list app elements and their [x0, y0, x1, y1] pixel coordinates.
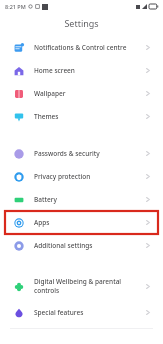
button[interactable]: Passwords & security	[0, 142, 163, 165]
button[interactable]: Home screen	[0, 59, 163, 82]
button[interactable]: Apps	[5, 211, 158, 234]
staticText: Privacy protection	[34, 172, 142, 181]
button[interactable]: Wallpaper	[0, 82, 163, 105]
staticText: Themes	[34, 112, 142, 121]
staticText: Digital Wellbeing & parental controls	[34, 277, 142, 295]
staticText: 8:21 PM	[5, 3, 26, 10]
button[interactable]: Privacy protection	[0, 165, 163, 188]
staticText: Battery	[34, 195, 142, 204]
staticText: Notifications & Control centre	[34, 43, 142, 52]
button[interactable]: Special features	[0, 301, 163, 324]
button[interactable]: Battery	[0, 188, 163, 211]
button[interactable]: Digital Wellbeing & parental controls	[0, 271, 163, 301]
staticText: Additional settings	[34, 241, 142, 250]
staticText: Wallpaper	[34, 89, 142, 98]
staticText: Settings	[64, 17, 99, 29]
button[interactable]: Themes	[0, 105, 163, 128]
staticText: Home screen	[34, 66, 142, 75]
staticText: Special features	[34, 308, 142, 317]
staticText: Passwords & security	[34, 149, 142, 158]
button[interactable]: Additional settings	[0, 234, 163, 257]
staticText: Apps	[34, 218, 142, 227]
button[interactable]: Notifications & Control centre	[0, 36, 163, 59]
